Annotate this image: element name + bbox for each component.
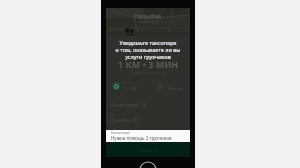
staticText: Комментарий <box>111 131 130 135</box>
staticText: Принять <box>139 147 157 153</box>
other: Home <box>139 161 157 168</box>
staticText: Уведомьте таксопарк о том, оказываете ли… <box>115 39 181 60</box>
staticText: Пушкина, 30 <box>110 117 140 124</box>
staticText: ₸1 150 <box>123 85 137 91</box>
staticText: 1 КМ • 3 МИН <box>118 58 179 70</box>
staticText: Наурызбай <box>135 13 162 20</box>
staticText: Назарбаева, 14 <box>110 102 146 109</box>
staticText: Эконом <box>167 86 182 91</box>
staticText: Алгабас-1, 15 <box>138 20 159 24</box>
staticText: Нужна помощь 2 грузчиков <box>111 135 172 141</box>
staticText: Ближняя подача <box>132 70 165 75</box>
button[interactable]: Комментарий <box>106 130 190 142</box>
